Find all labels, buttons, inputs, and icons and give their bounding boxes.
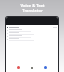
- button[interactable]: [7, 29, 57, 32]
- button[interactable]: [7, 26, 57, 29]
- button[interactable]: Settings: [44, 66, 47, 69]
- button[interactable]: [7, 35, 57, 38]
- staticText: Voice & Text: [20, 3, 45, 8]
- button[interactable]: Translate: [17, 66, 20, 69]
- button[interactable]: [7, 32, 57, 35]
- button[interactable]: [7, 38, 57, 41]
- staticText: Translator: [22, 8, 43, 13]
